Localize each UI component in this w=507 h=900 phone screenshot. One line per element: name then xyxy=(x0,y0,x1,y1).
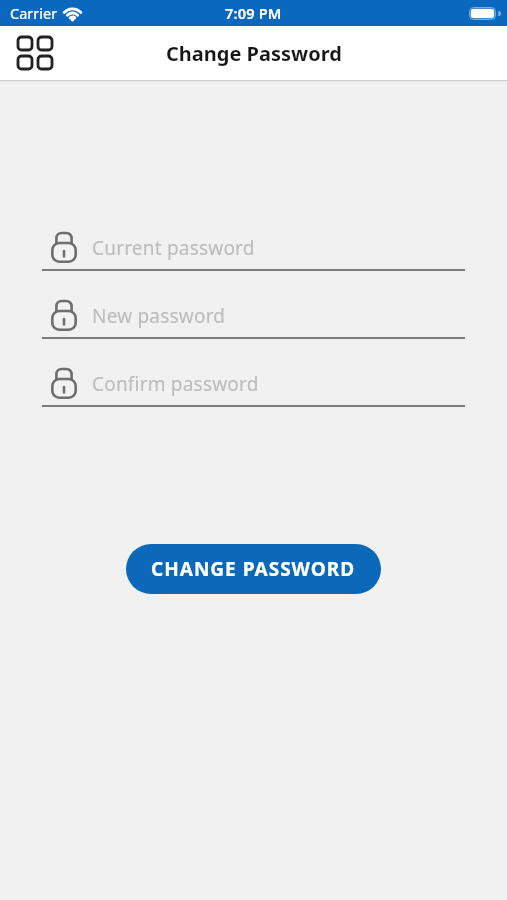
staticText: Confirm password xyxy=(92,371,259,397)
staticText: 7:09 PM xyxy=(225,3,282,23)
staticText: CHANGE PASSWORD xyxy=(151,556,356,582)
staticText: Current password xyxy=(92,235,255,261)
staticText: New password xyxy=(92,303,226,329)
button[interactable]: Confirm password xyxy=(42,368,465,407)
button[interactable]: New password xyxy=(42,300,465,339)
button[interactable]: CHANGE PASSWORD xyxy=(126,544,381,594)
button[interactable]: Current password xyxy=(42,232,465,271)
staticText: Carrier xyxy=(10,3,58,23)
button[interactable] xyxy=(18,37,52,69)
staticText: Change Password xyxy=(166,40,342,67)
